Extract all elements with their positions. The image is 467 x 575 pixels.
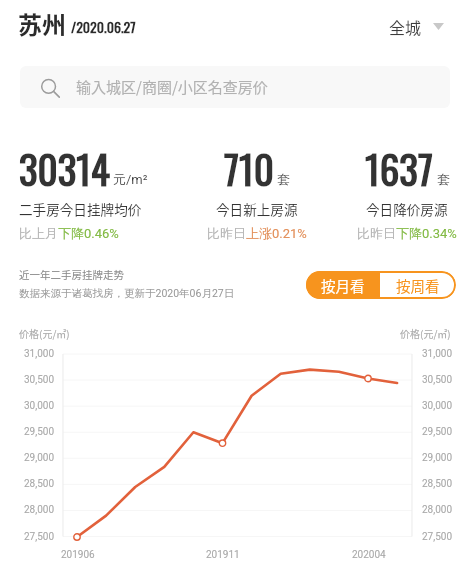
- staticText: 201911: [206, 549, 240, 561]
- staticText: 29,000: [24, 452, 55, 464]
- staticText: 按周看: [396, 275, 440, 296]
- staticText: 比上月: [19, 225, 58, 241]
- staticText: 下降0.46%: [58, 225, 119, 241]
- staticText: 苏州: [18, 6, 66, 41]
- staticText: 今日新上房源: [216, 199, 298, 219]
- staticText: 28,500: [24, 478, 55, 490]
- staticText: 比昨日: [207, 225, 246, 241]
- staticText: 27,500: [422, 531, 453, 543]
- button[interactable]: 按月看: [306, 271, 380, 299]
- staticText: 今日降价房源: [366, 199, 448, 219]
- staticText: 29,500: [422, 426, 453, 438]
- staticText: 30,500: [24, 374, 55, 386]
- staticText: 输入城区/商圈/小区名查房价: [76, 76, 268, 98]
- staticText: 价格(元/㎡): [400, 326, 451, 340]
- staticText: 27,500: [24, 531, 55, 543]
- button[interactable]: 按周看: [380, 271, 456, 299]
- button[interactable]: 全城: [387, 13, 446, 40]
- staticText: 202004: [352, 549, 386, 561]
- staticText: 710: [224, 139, 274, 197]
- staticText: 31,000: [24, 348, 55, 360]
- staticText: 按月看: [321, 275, 365, 296]
- staticText: 30,000: [422, 400, 453, 412]
- staticText: 30314: [19, 139, 110, 197]
- staticText: 30,000: [24, 400, 55, 412]
- staticText: 29,000: [422, 452, 453, 464]
- button[interactable]: 输入城区/商圈/小区名查房价: [20, 66, 450, 108]
- staticText: 全城: [389, 15, 422, 38]
- staticText: 29,500: [24, 426, 55, 438]
- staticText: 元/m²: [113, 171, 148, 187]
- staticText: 套: [437, 171, 450, 187]
- staticText: 31,000: [422, 348, 453, 360]
- staticText: 28,500: [422, 478, 453, 490]
- staticText: 套: [277, 171, 290, 187]
- staticText: 比昨日: [357, 225, 396, 241]
- staticText: 上涨0.21%: [246, 225, 307, 241]
- staticText: 数据来源于诸葛找房，更新于2020年06月27日: [19, 287, 235, 300]
- staticText: 30,500: [422, 374, 453, 386]
- staticText: 近一年二手房挂牌走势: [19, 267, 124, 282]
- staticText: 28,000: [24, 504, 55, 516]
- staticText: 二手房今日挂牌均价: [19, 199, 142, 219]
- staticText: 下降0.34%: [396, 225, 457, 241]
- staticText: 价格(元/㎡): [19, 326, 70, 340]
- staticText: 1637: [365, 139, 434, 197]
- staticText: 201906: [61, 549, 95, 561]
- staticText: /2020.06.27: [71, 16, 136, 37]
- staticText: 28,000: [422, 504, 453, 516]
